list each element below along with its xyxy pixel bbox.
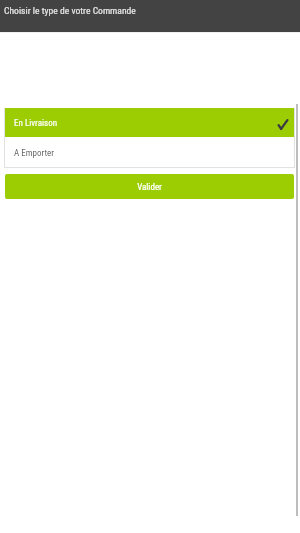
button[interactable]: A Emporter (5, 137, 294, 167)
staticText: Valider (137, 182, 162, 193)
staticText: A Emporter (14, 148, 55, 159)
other: Selected (274, 116, 290, 132)
staticText: En Livraison (14, 118, 58, 129)
staticText: Choisir le type de votre Commande (4, 5, 136, 16)
button[interactable]: En Livraison (5, 108, 294, 137)
button[interactable]: Valider (5, 174, 294, 199)
